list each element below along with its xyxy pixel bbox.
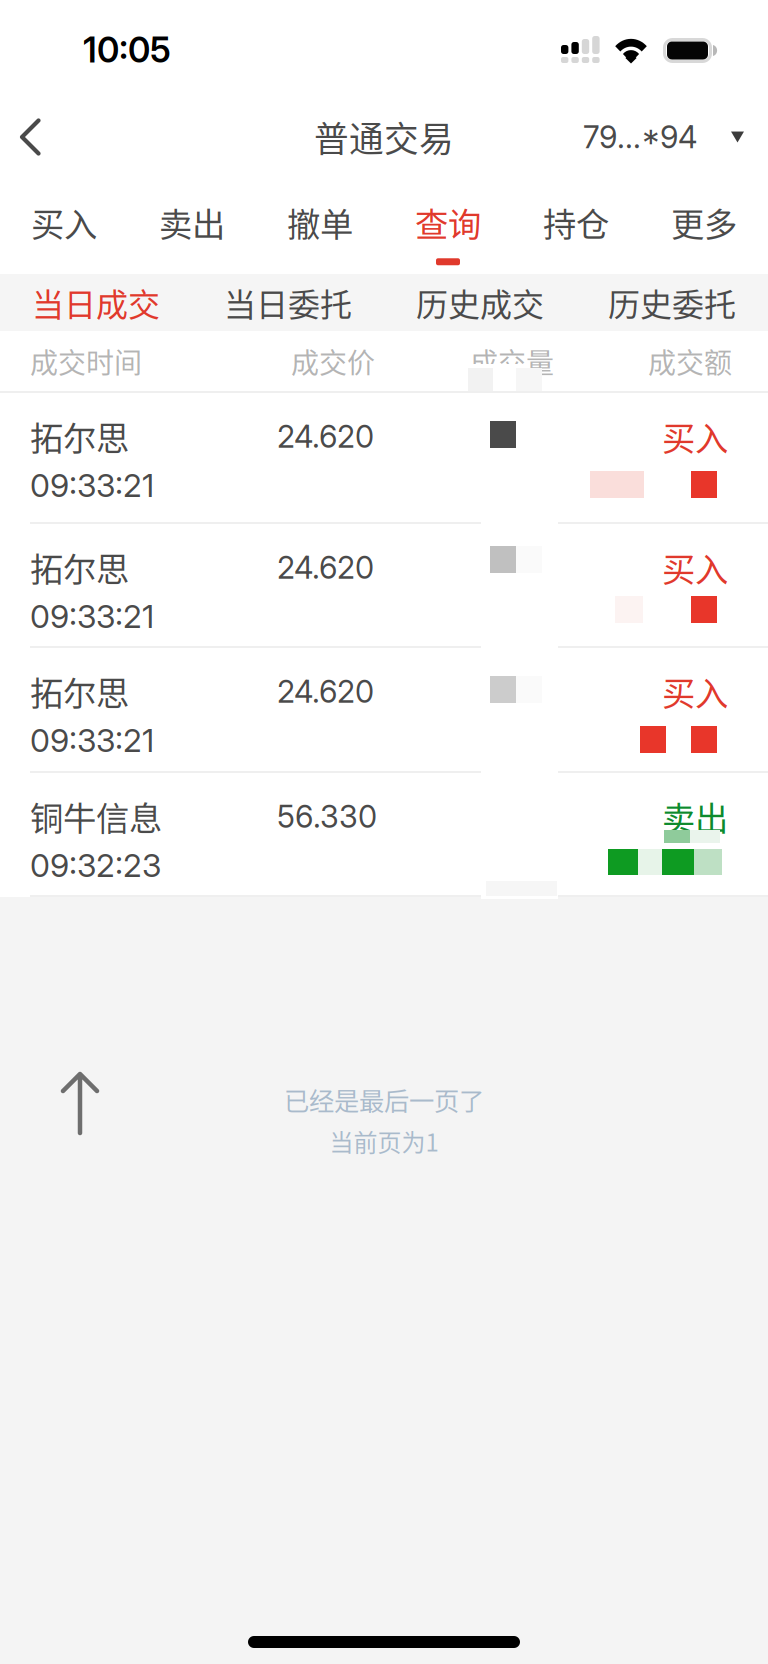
staticText: 买入: [31, 198, 97, 246]
staticText: 79...*94: [583, 118, 697, 155]
button[interactable]: 当日委托: [192, 274, 384, 331]
staticText: 当前页为1: [329, 1124, 438, 1158]
staticText: 当日成交: [32, 279, 160, 326]
button[interactable]: Back: [0, 102, 61, 171]
staticText: 拓尔思: [30, 412, 129, 460]
staticText: 09:33:21: [30, 721, 154, 760]
staticText: 成交额: [648, 341, 732, 381]
button[interactable]: 查询: [384, 182, 512, 274]
staticText: 已经是最后一页了: [284, 1081, 484, 1118]
staticText: 成交量: [470, 341, 554, 381]
staticText: 持仓: [543, 198, 609, 246]
staticText: 卖出: [662, 792, 728, 840]
staticText: 24.620: [277, 673, 374, 710]
staticText: 撤单: [287, 198, 353, 246]
staticText: 普通交易: [314, 112, 454, 162]
staticText: 09:33:21: [30, 597, 154, 636]
staticText: 56.330: [277, 798, 377, 835]
button[interactable]: 买入: [0, 182, 128, 274]
button[interactable]: 历史委托: [576, 274, 768, 331]
button[interactable]: 当日成交: [0, 274, 192, 331]
staticText: 历史委托: [608, 279, 736, 326]
staticText: 拓尔思: [30, 543, 129, 591]
staticText: 买入: [662, 543, 728, 591]
button[interactable]: 撤单: [256, 182, 384, 274]
button[interactable]: 更多: [640, 182, 768, 274]
staticText: 铜牛信息: [30, 792, 162, 840]
button[interactable]: Scroll to top: [46, 1055, 114, 1151]
staticText: 当日委托: [224, 279, 352, 326]
button[interactable]: 卖出: [128, 182, 256, 274]
staticText: 查询: [415, 198, 481, 246]
staticText: 10:05: [83, 29, 171, 71]
staticText: 卖出: [159, 198, 225, 246]
staticText: 买入: [662, 667, 728, 715]
staticText: 09:32:23: [30, 846, 161, 885]
staticText: 历史成交: [416, 279, 544, 326]
staticText: 更多: [671, 198, 737, 246]
staticText: 09:33:21: [30, 466, 154, 505]
button[interactable]: 持仓: [512, 182, 640, 274]
staticText: 成交时间: [30, 341, 142, 381]
button[interactable]: 历史成交: [384, 274, 576, 331]
staticText: 成交价: [291, 341, 375, 381]
staticText: 24.620: [277, 549, 374, 586]
staticText: 24.620: [277, 418, 374, 455]
staticText: 买入: [662, 412, 728, 460]
staticText: 拓尔思: [30, 667, 129, 715]
button[interactable]: 79...*94: [571, 104, 756, 169]
